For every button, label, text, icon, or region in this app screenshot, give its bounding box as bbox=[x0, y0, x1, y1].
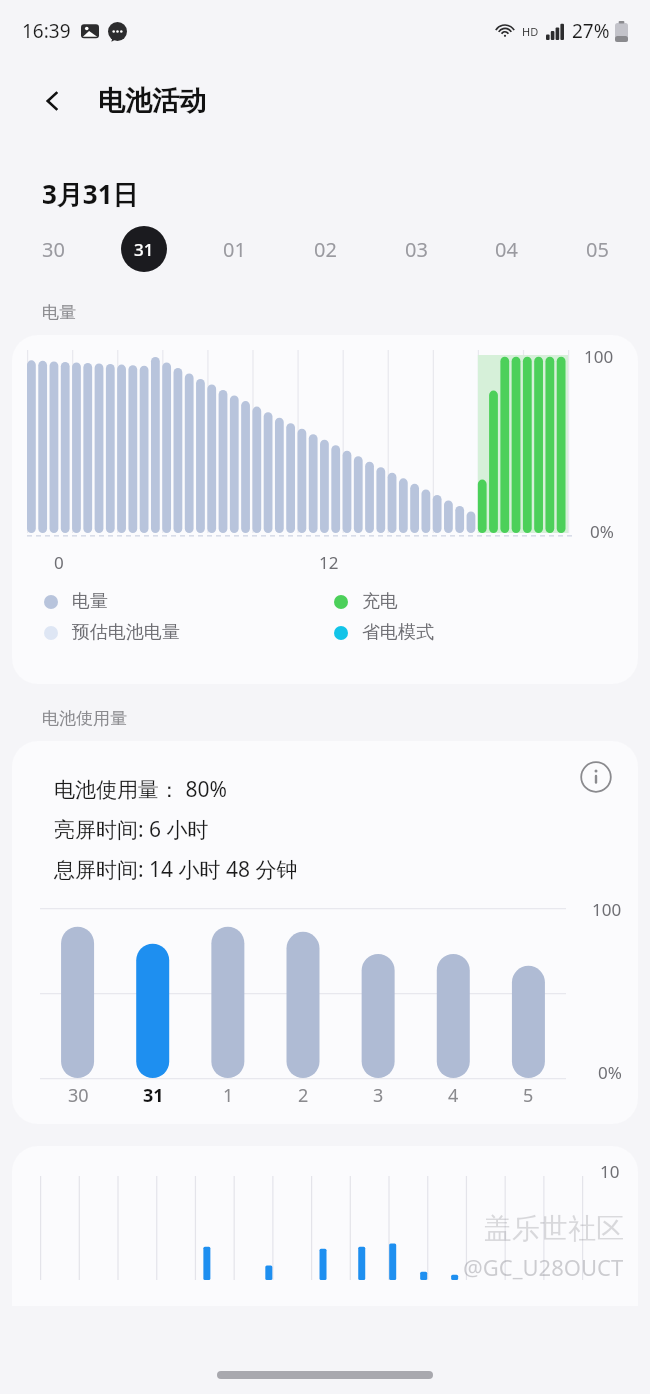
staticText: 30 bbox=[68, 1083, 89, 1108]
staticText: 27% bbox=[572, 18, 610, 44]
button[interactable]: 02 bbox=[302, 226, 348, 272]
button[interactable]: Info bbox=[572, 753, 620, 801]
staticText: HD bbox=[522, 24, 539, 39]
button[interactable]: 01 bbox=[211, 226, 257, 272]
staticText: 电池活动 bbox=[98, 84, 206, 118]
button[interactable]: 电池使用量： 80% bbox=[12, 741, 638, 1124]
staticText: 3 bbox=[373, 1083, 384, 1108]
button[interactable]: 31 bbox=[121, 226, 167, 272]
button[interactable]: 03 bbox=[393, 226, 439, 272]
staticText: 4 bbox=[448, 1083, 459, 1108]
staticText: 电池使用量： 80% bbox=[54, 775, 227, 804]
button[interactable]: Back bbox=[30, 78, 76, 124]
staticText: 1 bbox=[223, 1083, 234, 1108]
staticText: 02 bbox=[314, 236, 337, 263]
staticText: 省电模式 bbox=[362, 621, 434, 644]
staticText: 30 bbox=[42, 236, 65, 263]
staticText: 电池使用量 bbox=[42, 708, 127, 729]
staticText: 03 bbox=[405, 236, 428, 263]
staticText: 息屏时间: 14 小时 48 分钟 bbox=[54, 855, 298, 884]
staticText: 充电 bbox=[362, 590, 398, 613]
staticText: 亮屏时间: 6 小时 bbox=[54, 815, 209, 844]
staticText: 0% bbox=[590, 520, 614, 543]
button[interactable]: 100 bbox=[12, 335, 638, 684]
button[interactable]: 05 bbox=[574, 226, 620, 272]
staticText: 5 bbox=[523, 1083, 534, 1108]
staticText: 16:39 bbox=[22, 18, 71, 44]
staticText: 12 bbox=[319, 551, 339, 574]
staticText: 05 bbox=[586, 236, 609, 263]
staticText: 10 bbox=[600, 1160, 620, 1183]
staticText: 01 bbox=[223, 236, 246, 263]
staticText: 盖乐世社区 bbox=[484, 1211, 624, 1246]
staticText: 电量 bbox=[42, 302, 76, 323]
staticText: 电量 bbox=[72, 590, 108, 613]
staticText: 3月31日 bbox=[42, 176, 139, 212]
staticText: 预估电池电量 bbox=[72, 621, 180, 644]
button[interactable]: 04 bbox=[483, 226, 529, 272]
staticText: 0% bbox=[598, 1061, 622, 1084]
staticText: 0 bbox=[54, 551, 64, 574]
staticText: 100 bbox=[584, 345, 614, 368]
button[interactable]: 30 bbox=[30, 226, 76, 272]
staticText: 31 bbox=[134, 238, 154, 261]
staticText: 04 bbox=[495, 236, 518, 263]
staticText: 31 bbox=[143, 1083, 164, 1108]
staticText: @GC_U28OUCT bbox=[463, 1252, 624, 1282]
staticText: 2 bbox=[298, 1083, 309, 1108]
staticText: 100 bbox=[592, 898, 622, 921]
